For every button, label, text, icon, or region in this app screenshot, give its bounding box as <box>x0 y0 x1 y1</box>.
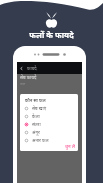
button[interactable]: अनार फल <box>20 136 78 144</box>
staticText: संतरा <box>32 121 41 127</box>
staticText: चुन लें <box>65 143 75 149</box>
button[interactable]: चुन लें <box>64 143 76 149</box>
staticText: सेब खाएं <box>32 105 47 111</box>
staticText: फलों के फायदे <box>0 29 103 40</box>
button[interactable]: संतरा <box>20 120 78 128</box>
staticText: अनार फल <box>32 137 49 143</box>
other: Back <box>19 66 24 71</box>
staticText: फल <box>20 81 26 86</box>
staticText: फायदे <box>27 65 37 71</box>
button[interactable]: केला <box>20 112 78 120</box>
button[interactable]: अंगूर <box>20 128 78 136</box>
staticText: कौन सा फल <box>25 97 46 103</box>
button[interactable]: Back <box>17 62 82 74</box>
button[interactable]: सेब खाएं <box>20 104 78 112</box>
staticText: सेब फायदे <box>20 74 37 80</box>
staticText: केला <box>32 113 40 119</box>
staticText: अंगूर <box>32 129 40 135</box>
